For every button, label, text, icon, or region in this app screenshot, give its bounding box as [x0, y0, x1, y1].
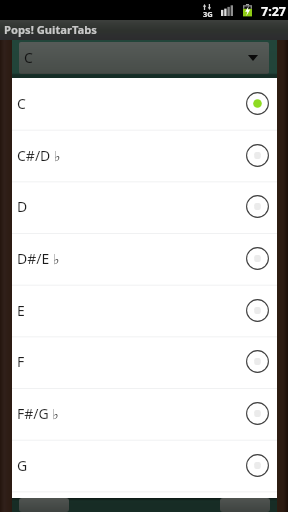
staticText: D [17, 197, 28, 216]
button[interactable]: C [19, 42, 269, 74]
staticText: Pops! GuitarTabs [4, 22, 97, 37]
staticText: C#/D ♭ [17, 146, 61, 165]
button[interactable]: D [12, 181, 277, 233]
button[interactable]: OK [220, 498, 270, 512]
button[interactable]: C#/D ♭ [12, 130, 277, 182]
staticText: F [17, 352, 25, 371]
staticText: 7:27 [261, 3, 286, 20]
button[interactable]: Cancel [19, 498, 69, 512]
button[interactable]: D#/E ♭ [12, 233, 277, 285]
staticText: C [17, 94, 26, 113]
button[interactable]: E [12, 285, 277, 337]
button[interactable]: F#/G ♭ [12, 388, 277, 440]
staticText: 3G [203, 9, 213, 19]
staticText: D#/E ♭ [17, 249, 60, 268]
staticText: F#/G ♭ [17, 404, 59, 423]
staticText: G [17, 456, 28, 475]
button[interactable]: C [12, 78, 277, 130]
button[interactable]: F [12, 336, 277, 388]
staticText: E [17, 301, 25, 320]
staticText: C [24, 48, 33, 67]
button[interactable]: G [12, 440, 277, 492]
